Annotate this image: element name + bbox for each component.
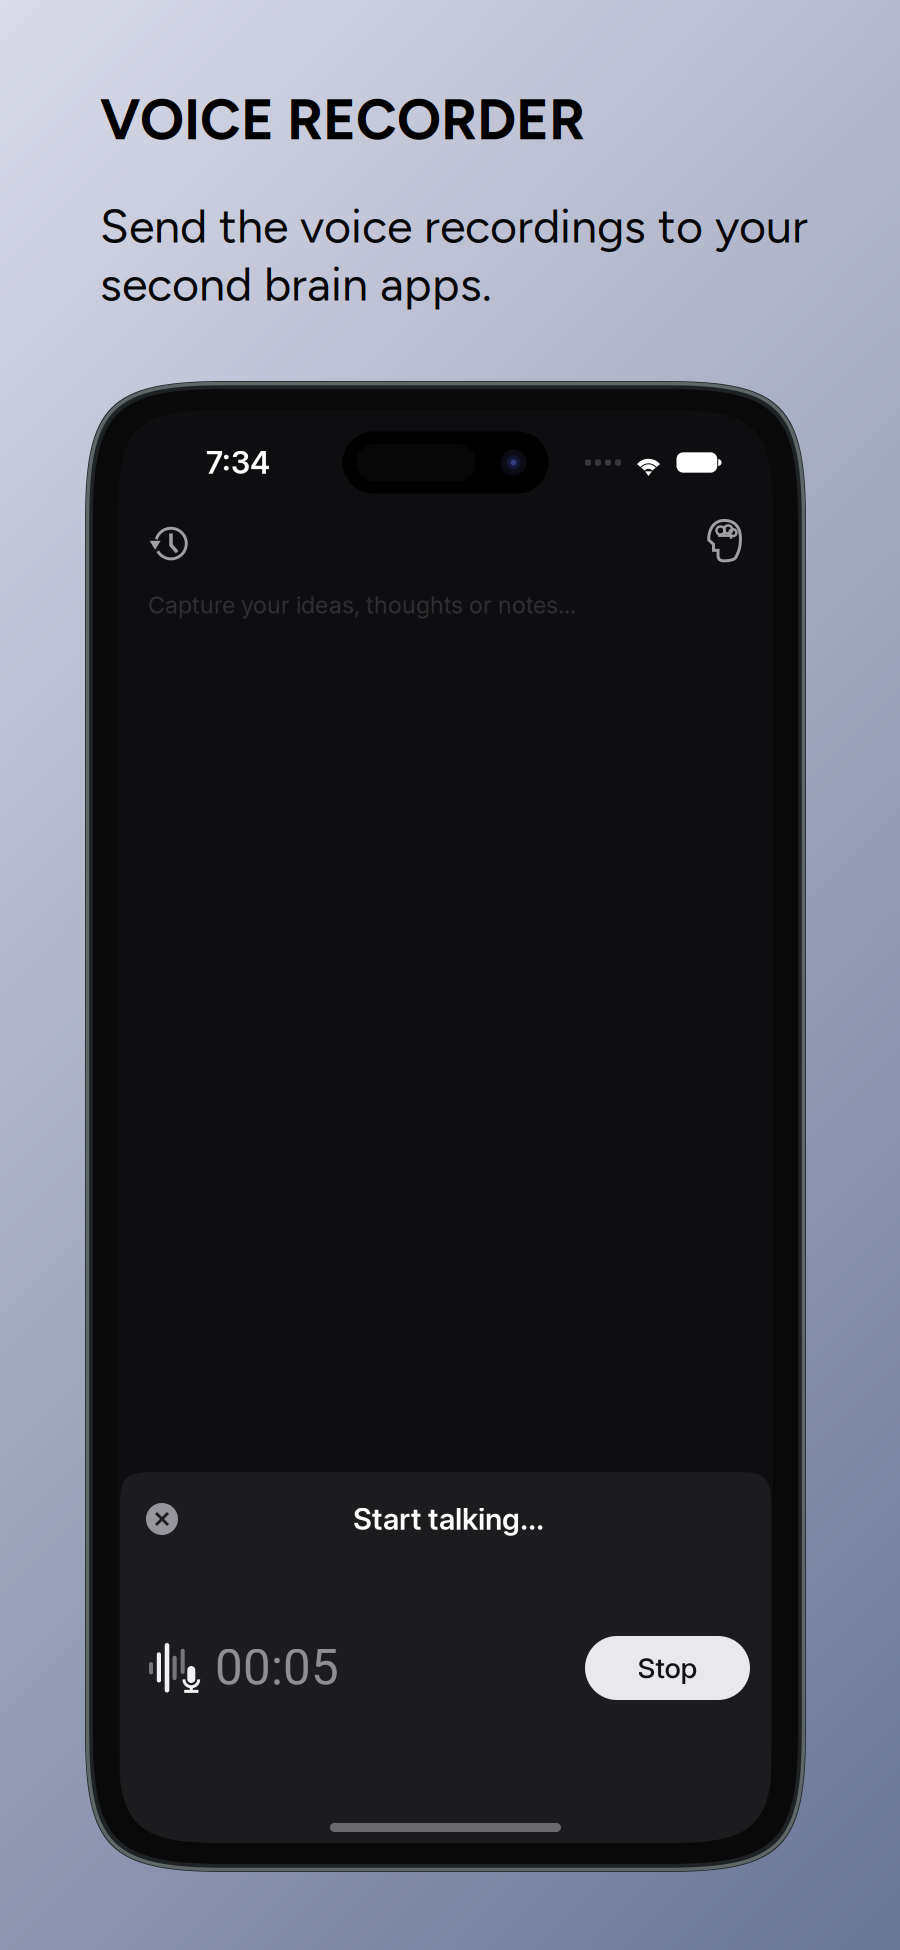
button[interactable]: Close recorder <box>138 1495 186 1543</box>
staticText: 7:34 <box>206 444 270 481</box>
button[interactable]: Recording history <box>138 511 196 569</box>
button[interactable]: Stop <box>585 1636 750 1700</box>
staticText: Send the voice recordings to your second… <box>100 198 808 312</box>
staticText: Capture your ideas, thoughts or notes... <box>148 591 576 619</box>
staticText: VOICE RECORDER <box>100 86 585 153</box>
staticText: Stop <box>637 1651 697 1685</box>
button[interactable]: Second brain settings <box>695 511 753 569</box>
staticText: 00:05 <box>215 1639 339 1697</box>
staticText: Start talking... <box>353 1501 544 1537</box>
